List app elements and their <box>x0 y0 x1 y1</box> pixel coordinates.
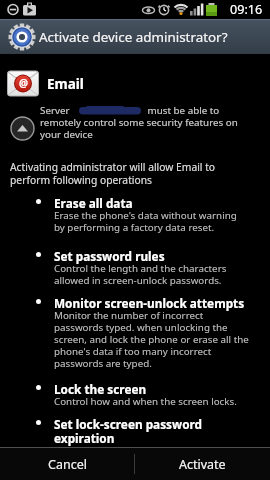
staticText: Cancel <box>48 456 87 473</box>
staticText: 09:16 <box>230 1 263 18</box>
staticText: Set password rules <box>54 248 165 264</box>
staticText: Activating administrator will allow Emai… <box>10 160 216 187</box>
staticText: Activate <box>179 456 226 473</box>
button[interactable]: Cancel <box>0 448 134 480</box>
staticText: Activate device administrator? <box>39 28 228 46</box>
staticText: Monitor screen-unlock attempts <box>54 295 245 311</box>
staticText: Set lock-screen password expiration <box>54 416 202 446</box>
staticText: Server <box>40 104 73 117</box>
staticText: Lock the screen <box>54 381 147 397</box>
staticText: remotely control some security features … <box>40 116 238 141</box>
button[interactable] <box>10 116 35 141</box>
staticText: Control the length and the characters al… <box>54 262 227 287</box>
staticText: Erase the phone's data without warning b… <box>54 209 237 234</box>
button[interactable]: Activate <box>135 448 270 480</box>
staticText: must be able to <box>145 104 220 117</box>
staticText: Email <box>47 75 84 93</box>
staticText: @ <box>19 76 28 90</box>
staticText: Control how and when the screen locks. <box>54 395 237 408</box>
staticText: Monitor the number of incorrect password… <box>54 309 249 370</box>
staticText: Erase all data <box>54 195 133 211</box>
